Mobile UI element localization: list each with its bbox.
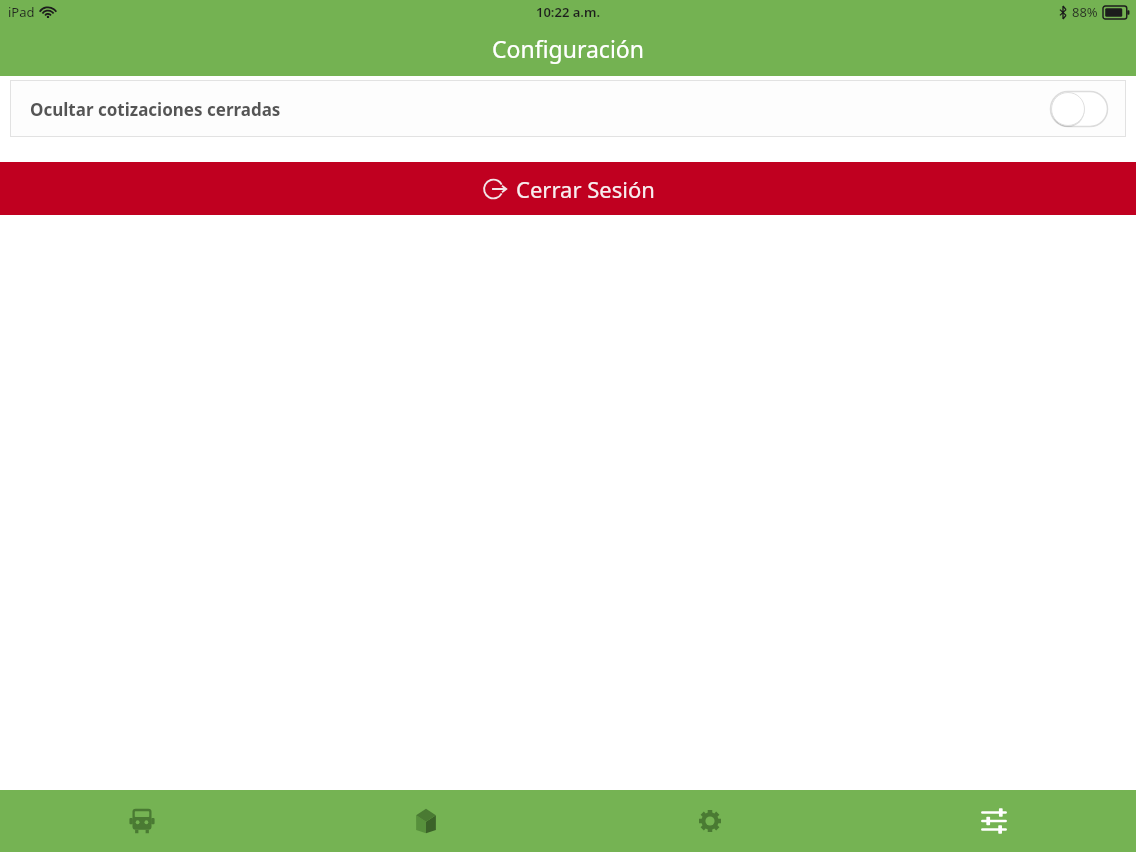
button[interactable]: Configuración xyxy=(852,790,1136,852)
staticText: Ocultar cotizaciones cerradas xyxy=(30,98,281,121)
staticText: Configuración xyxy=(0,33,1136,64)
staticText: 10:22 a.m. xyxy=(536,3,600,21)
button[interactable]: Viajes xyxy=(0,790,284,852)
button[interactable]: Ocultar cotizaciones cerradas xyxy=(10,80,1126,137)
button[interactable]: Ocultar cotizaciones cerradas xyxy=(1050,91,1108,127)
staticText: Cerrar Sesión xyxy=(516,174,655,204)
staticText: 88% xyxy=(1072,3,1098,21)
button[interactable]: Servicios xyxy=(568,790,852,852)
staticText: iPad xyxy=(8,3,35,21)
button[interactable]: Cerrar Sesión xyxy=(0,162,1136,215)
button[interactable]: Paquetes xyxy=(284,790,568,852)
